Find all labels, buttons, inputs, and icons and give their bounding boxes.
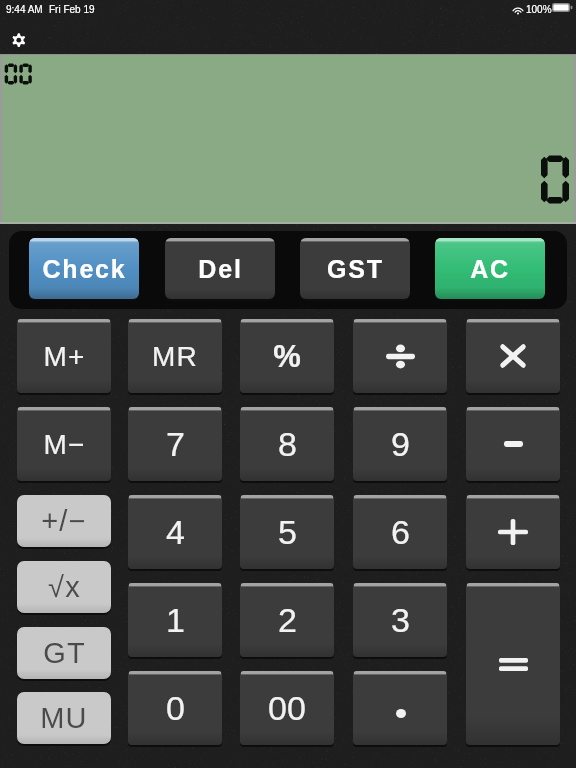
- button[interactable]: 1: [128, 583, 222, 657]
- staticText: 00: [268, 689, 306, 727]
- staticText: 3: [391, 601, 410, 639]
- button[interactable]: +/−: [17, 495, 111, 547]
- staticText: +/−: [41, 505, 87, 537]
- button[interactable]: 2: [240, 583, 334, 657]
- staticText: MR: [152, 341, 198, 372]
- button[interactable]: [466, 319, 560, 393]
- staticText: M+: [43, 341, 86, 372]
- button[interactable]: 8: [240, 407, 334, 481]
- staticText: 1: [166, 601, 185, 639]
- button[interactable]: GST: [300, 238, 410, 299]
- button[interactable]: MR: [128, 319, 222, 393]
- staticText: Check: [42, 255, 127, 283]
- button[interactable]: 4: [128, 495, 222, 569]
- staticText: 9:44 AM: [6, 4, 43, 15]
- button[interactable]: %: [240, 319, 334, 393]
- button[interactable]: 9: [353, 407, 447, 481]
- button[interactable]: [466, 583, 560, 745]
- staticText: %: [273, 339, 301, 374]
- staticText: 7: [166, 425, 185, 463]
- button[interactable]: [466, 407, 560, 481]
- staticText: 8: [278, 425, 297, 463]
- staticText: MU: [40, 702, 88, 734]
- button[interactable]: Settings: [6, 28, 32, 54]
- button[interactable]: [466, 495, 560, 569]
- button[interactable]: M−: [17, 407, 111, 481]
- staticText: 100%: [526, 4, 552, 15]
- button[interactable]: 7: [128, 407, 222, 481]
- staticText: 6: [391, 513, 410, 551]
- button[interactable]: MU: [17, 692, 111, 744]
- button[interactable]: 5: [240, 495, 334, 569]
- button[interactable]: 0: [128, 671, 222, 745]
- button[interactable]: 6: [353, 495, 447, 569]
- button[interactable]: [353, 671, 447, 745]
- staticText: 9: [391, 425, 410, 463]
- button[interactable]: AC: [435, 238, 545, 299]
- staticText: √x: [48, 571, 81, 603]
- button[interactable]: 00: [240, 671, 334, 745]
- button[interactable]: GT: [17, 627, 111, 679]
- staticText: 5: [278, 513, 297, 551]
- button[interactable]: √x: [17, 561, 111, 613]
- button[interactable]: [353, 319, 447, 393]
- button[interactable]: Check: [29, 238, 139, 299]
- staticText: Del: [198, 255, 243, 283]
- staticText: Fri Feb 19: [49, 4, 95, 15]
- staticText: GT: [43, 637, 86, 669]
- staticText: M−: [43, 429, 86, 460]
- staticText: AC: [470, 255, 510, 283]
- button[interactable]: 3: [353, 583, 447, 657]
- staticText: 0: [166, 689, 185, 727]
- staticText: 4: [166, 513, 185, 551]
- staticText: GST: [327, 255, 384, 283]
- button[interactable]: M+: [17, 319, 111, 393]
- staticText: 2: [278, 601, 297, 639]
- button[interactable]: Del: [165, 238, 275, 299]
